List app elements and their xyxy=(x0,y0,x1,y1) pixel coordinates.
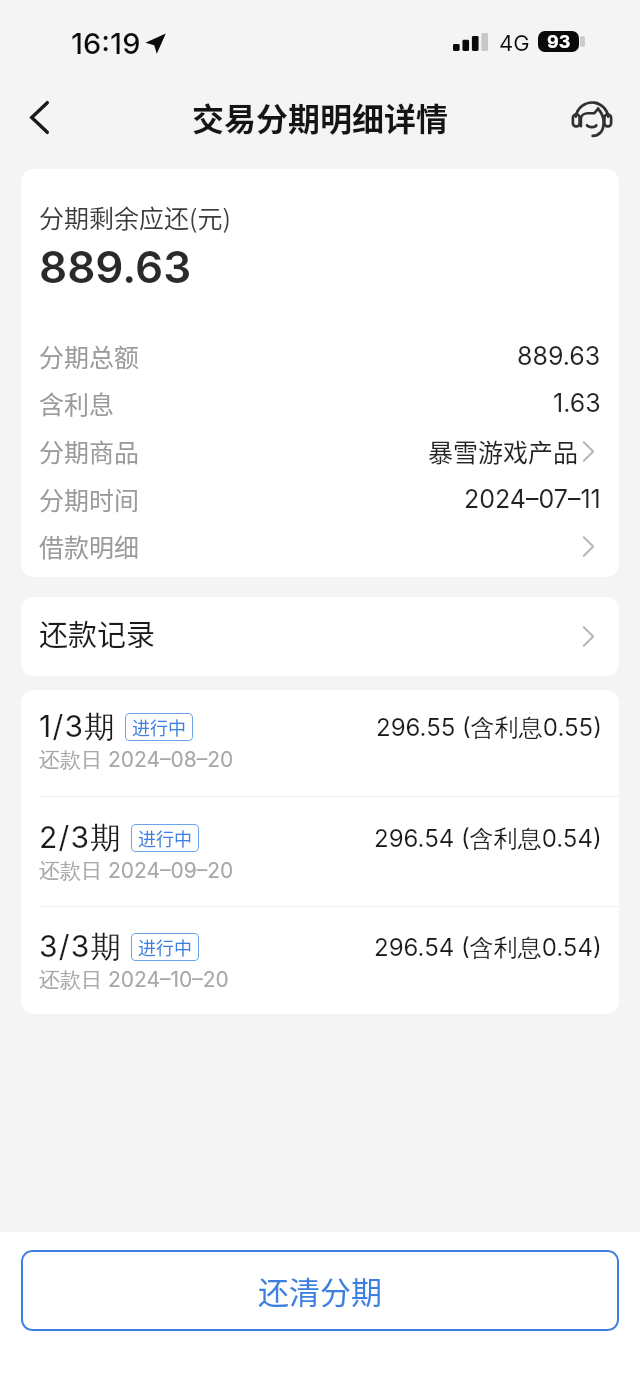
button[interactable]: 2/3期 xyxy=(21,797,619,907)
staticText: 分期时间 xyxy=(39,481,140,517)
staticText: 还款日 2024–08–20 xyxy=(39,747,234,774)
staticText: 2/3期 xyxy=(39,819,122,857)
button[interactable]: Back xyxy=(10,88,68,146)
button[interactable]: 分期商品 xyxy=(39,427,601,475)
staticText: 16:19 xyxy=(71,26,141,61)
staticText: 进行中 xyxy=(132,714,186,740)
staticText: 3/3期 xyxy=(39,928,122,966)
staticText: 296.54 (含利息0.54) xyxy=(374,933,602,963)
staticText: 2024–07–11 xyxy=(464,484,601,514)
button[interactable]: 借款明细 xyxy=(39,522,601,570)
staticText: 进行中 xyxy=(138,825,192,851)
staticText: 还款记录 xyxy=(39,612,156,654)
staticText: 交易分期明细详情 xyxy=(192,94,449,140)
button[interactable]: Customer service xyxy=(563,92,621,150)
staticText: 暴雪游戏产品 xyxy=(428,433,579,469)
staticText: 93 xyxy=(547,31,571,52)
staticText: 还款日 2024–10–20 xyxy=(39,967,229,994)
staticText: 296.54 (含利息0.54) xyxy=(374,824,602,854)
staticText: 还款日 2024–09–20 xyxy=(39,858,234,885)
button[interactable]: 分期总额 xyxy=(39,332,601,379)
button[interactable]: 还清分期 xyxy=(21,1250,619,1331)
staticText: 借款明细 xyxy=(39,528,140,564)
staticText: 还清分期 xyxy=(258,1268,382,1313)
button[interactable]: 1/3期 xyxy=(21,690,619,797)
staticText: 4G xyxy=(499,30,530,57)
staticText: 分期商品 xyxy=(39,433,140,469)
staticText: 分期总额 xyxy=(39,338,140,374)
button[interactable]: 3/3期 xyxy=(21,907,619,1014)
staticText: 1/3期 xyxy=(39,708,116,746)
staticText: 889.63 xyxy=(39,240,192,293)
button[interactable]: 分期时间 xyxy=(39,475,601,522)
staticText: 296.55 (含利息0.55) xyxy=(376,713,602,743)
button[interactable]: 还款记录 xyxy=(21,597,619,676)
staticText: 进行中 xyxy=(138,934,192,960)
staticText: 1.63 xyxy=(553,388,601,418)
staticText: 含利息 xyxy=(39,385,115,421)
staticText: 889.63 xyxy=(517,341,601,371)
staticText: 分期剩余应还(元) xyxy=(39,199,231,235)
button[interactable]: 含利息 xyxy=(39,379,601,427)
